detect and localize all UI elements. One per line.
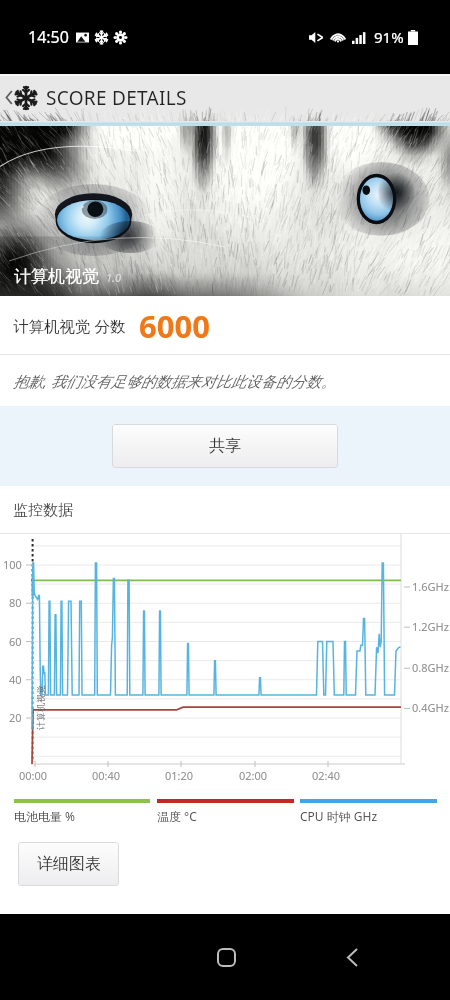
staticText: 详细图表 bbox=[37, 854, 101, 874]
staticText: 02:00 bbox=[239, 768, 268, 783]
button[interactable]: Back bbox=[325, 930, 379, 984]
staticText: 20 bbox=[9, 710, 22, 725]
staticText: CPU 时钟 GHz bbox=[300, 808, 437, 824]
staticText: 抱歉, 我们没有足够的数据来对比此设备的分数。 bbox=[13, 371, 336, 391]
staticText: 0.4GHz bbox=[412, 700, 449, 715]
staticText: 1.0 bbox=[106, 270, 121, 285]
staticText: 02:40 bbox=[312, 768, 341, 783]
staticText: 80 bbox=[9, 595, 22, 610]
staticText: 电池电量 % bbox=[14, 808, 150, 824]
staticText: 00:40 bbox=[92, 768, 121, 783]
staticText: 计算机视觉 bbox=[35, 685, 46, 730]
staticText: 6000 bbox=[139, 305, 210, 347]
staticText: 100 bbox=[3, 557, 22, 572]
staticText: 计算机视觉 分数 bbox=[13, 315, 126, 336]
staticText: 温度 °C bbox=[157, 808, 294, 824]
staticText: 共享 bbox=[209, 436, 241, 456]
button[interactable]: SCORE DETAILS bbox=[0, 74, 450, 121]
staticText: 计算机视觉 bbox=[14, 266, 99, 287]
button[interactable]: 详细图表 bbox=[18, 842, 119, 886]
staticText: 40 bbox=[9, 672, 22, 687]
staticText: 1.6GHz bbox=[412, 579, 449, 594]
staticText: 14:50 bbox=[28, 26, 69, 48]
staticText: 91% bbox=[374, 27, 404, 47]
staticText: 60 bbox=[9, 634, 22, 649]
staticText: 00:00 bbox=[19, 768, 48, 783]
staticText: 监控数据 bbox=[13, 501, 73, 520]
staticText: 0.8GHz bbox=[412, 660, 449, 675]
staticText: SCORE DETAILS bbox=[46, 85, 187, 111]
staticText: 1.2GHz bbox=[412, 619, 449, 634]
staticText: 01:20 bbox=[165, 768, 194, 783]
button[interactable]: 共享 bbox=[112, 424, 338, 468]
button[interactable]: Home bbox=[199, 930, 253, 984]
